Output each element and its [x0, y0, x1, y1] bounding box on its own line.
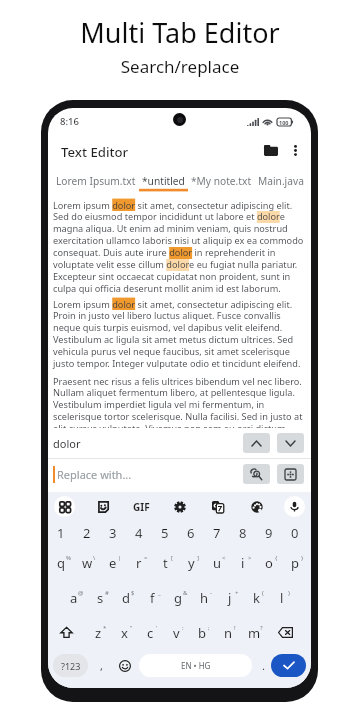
staticText: n [224, 624, 233, 642]
staticText: Main.java [258, 174, 304, 188]
button[interactable]: u [204, 545, 230, 580]
button[interactable]: *My note.txt [188, 168, 255, 192]
staticText: Praesent nec risus a felis ultrices bibe… [53, 375, 306, 428]
button[interactable]: Voice input [284, 496, 305, 517]
button[interactable]: t [152, 545, 178, 580]
button[interactable]: GIF [131, 496, 152, 517]
button[interactable]: 6 [178, 520, 204, 545]
button[interactable]: p [282, 545, 308, 580]
button[interactable]: d [113, 580, 139, 615]
staticText: ; [208, 624, 210, 632]
staticText: *untitled [142, 174, 185, 188]
staticText: p [291, 554, 299, 572]
button[interactable]: 0 [282, 520, 308, 545]
button[interactable]: ?123 [53, 654, 88, 677]
staticText: d [122, 589, 130, 607]
staticText: 100 [279, 119, 289, 126]
button[interactable]: *untitled [139, 168, 188, 192]
button[interactable]: k [243, 580, 269, 615]
button[interactable]: , [88, 654, 114, 677]
button[interactable]: h [191, 580, 217, 615]
button[interactable]: Emoji [114, 654, 136, 677]
button[interactable]: g [165, 580, 191, 615]
staticText: " [130, 624, 133, 632]
button[interactable]: Shift [48, 615, 85, 650]
staticText: GIF [133, 500, 150, 514]
staticText: m [248, 624, 261, 642]
button[interactable]: n [215, 615, 241, 650]
staticText: i [241, 554, 245, 572]
button[interactable]: Theme [246, 496, 267, 517]
button[interactable]: i [230, 545, 256, 580]
staticText: \ [93, 554, 96, 562]
staticText: q [57, 554, 65, 572]
button[interactable]: 4 [126, 520, 152, 545]
button[interactable]: f [139, 580, 165, 615]
button[interactable]: s [87, 580, 113, 615]
staticText: ?123 [61, 660, 81, 672]
staticText: dolor [53, 436, 243, 451]
button[interactable]: Apps [54, 496, 75, 517]
button[interactable]: Settings [169, 496, 190, 517]
staticText: _ [158, 589, 161, 597]
staticText: v [173, 624, 180, 642]
button[interactable]: EN • HG [139, 654, 252, 677]
staticText: 8 [239, 524, 247, 542]
staticText: l [280, 589, 284, 607]
button[interactable]: c [137, 615, 163, 650]
button[interactable]: More options [284, 139, 306, 161]
staticText: Lorem ipsum dolor sit amet, consectetur … [53, 199, 306, 295]
staticText: % [66, 554, 71, 562]
button[interactable]: o [256, 545, 282, 580]
button[interactable]: b [189, 615, 215, 650]
button[interactable]: 5 [152, 520, 178, 545]
button[interactable]: Backspace [267, 615, 304, 650]
button[interactable]: Lorem Ipsum.txt [53, 168, 139, 192]
button[interactable]: 3 [100, 520, 126, 545]
staticText: 4 [135, 524, 143, 542]
button[interactable]: Translate [207, 496, 228, 517]
button[interactable]: . [255, 654, 271, 677]
button[interactable]: Replace [243, 464, 270, 484]
staticText: r [136, 554, 142, 572]
staticText: a [70, 589, 78, 607]
staticText: ? [260, 624, 263, 632]
button[interactable]: x [111, 615, 137, 650]
button[interactable]: v [163, 615, 189, 650]
button[interactable]: w [74, 545, 100, 580]
button[interactable]: z [85, 615, 111, 650]
button[interactable]: 1 [48, 520, 74, 545]
staticText: g [174, 589, 182, 607]
button[interactable]: Replace all [277, 464, 304, 484]
button[interactable]: m [241, 615, 267, 650]
button[interactable]: Open folder [258, 137, 284, 163]
button[interactable]: 8 [230, 520, 256, 545]
staticText: y [188, 554, 195, 572]
button[interactable]: y [178, 545, 204, 580]
button[interactable]: 9 [256, 520, 282, 545]
button[interactable]: Find previous [243, 433, 270, 453]
staticText: c [147, 624, 154, 642]
staticText: Text Editor [61, 143, 129, 161]
staticText: , [100, 658, 103, 673]
button[interactable]: a [61, 580, 87, 615]
button[interactable]: Stickers [92, 496, 113, 517]
button[interactable]: Main.java [255, 168, 307, 192]
button[interactable]: r [126, 545, 152, 580]
button[interactable]: Find next [277, 433, 304, 453]
staticText: $ [131, 589, 135, 597]
button[interactable]: l [269, 580, 295, 615]
button[interactable]: 7 [204, 520, 230, 545]
staticText: 7 [213, 524, 221, 542]
button[interactable]: e [100, 545, 126, 580]
button[interactable]: 2 [74, 520, 100, 545]
staticText: @ [78, 589, 84, 597]
staticText: u [213, 554, 222, 572]
staticText: { [275, 554, 278, 562]
staticText: 3 [109, 524, 117, 542]
button[interactable]: q [48, 545, 74, 580]
staticText: ( [262, 589, 264, 597]
button[interactable]: j [217, 580, 243, 615]
button[interactable]: Done [271, 654, 306, 677]
staticText: b [198, 624, 206, 642]
